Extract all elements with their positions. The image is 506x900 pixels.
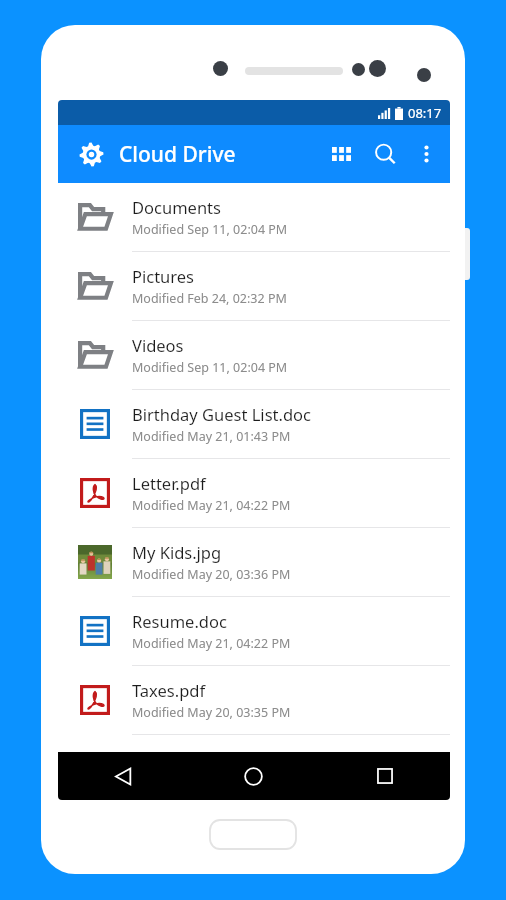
staticText: Cloud Drive bbox=[119, 140, 236, 169]
staticText: Modified May 20, 03:35 PM bbox=[132, 704, 291, 721]
button[interactable]: Videos bbox=[58, 321, 450, 389]
staticText: Modified May 20, 03:36 PM bbox=[132, 566, 291, 583]
staticText: Letter.pdf bbox=[132, 472, 206, 494]
staticText: 08:17 bbox=[408, 104, 442, 122]
button[interactable]: Grid view bbox=[319, 132, 363, 176]
staticText: Modified May 21, 04:22 PM bbox=[132, 635, 291, 652]
staticText: Modified May 21, 01:43 PM bbox=[132, 428, 291, 445]
staticText: Modified Sep 11, 02:04 PM bbox=[132, 359, 288, 376]
button[interactable]: Settings bbox=[71, 134, 111, 174]
button[interactable]: My Kids.jpg bbox=[58, 528, 450, 596]
staticText: Modified May 21, 04:22 PM bbox=[132, 497, 291, 514]
staticText: Resume.doc bbox=[132, 610, 227, 632]
button[interactable]: Documents bbox=[58, 183, 450, 251]
staticText: Modified Sep 11, 02:04 PM bbox=[132, 221, 288, 238]
staticText: Pictures bbox=[132, 265, 195, 287]
button[interactable]: Back bbox=[58, 752, 188, 800]
button[interactable]: Search bbox=[363, 132, 407, 176]
button[interactable]: More options bbox=[407, 135, 445, 173]
staticText: Modified Feb 24, 02:32 PM bbox=[132, 290, 287, 307]
button[interactable]: Resume.doc bbox=[58, 597, 450, 665]
staticText: My Kids.jpg bbox=[132, 541, 222, 563]
staticText: Documents bbox=[132, 196, 221, 218]
staticText: Videos bbox=[132, 334, 184, 356]
button[interactable]: Recent apps bbox=[319, 752, 450, 800]
staticText: Birthday Guest List.doc bbox=[132, 403, 311, 425]
button[interactable]: Home bbox=[188, 752, 319, 800]
button[interactable]: Letter.pdf bbox=[58, 459, 450, 527]
button[interactable]: Pictures bbox=[58, 252, 450, 320]
button[interactable]: Taxes.pdf bbox=[58, 666, 450, 734]
button[interactable]: Birthday Guest List.doc bbox=[58, 390, 450, 458]
staticText: Taxes.pdf bbox=[132, 679, 206, 701]
